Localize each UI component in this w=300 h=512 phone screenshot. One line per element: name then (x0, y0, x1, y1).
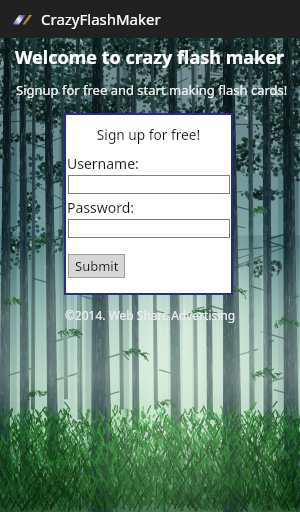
staticText: CrazyFlashMaker (41, 9, 161, 29)
staticText: Welcome to crazy flash maker (15, 45, 300, 70)
staticText: Submit (75, 257, 119, 275)
button[interactable] (68, 219, 230, 238)
staticText: Sign up for free! (67, 125, 230, 144)
staticText: Password: (67, 198, 135, 217)
button[interactable] (68, 175, 230, 194)
staticText: Signup for free and start making flash c… (16, 81, 300, 99)
other: App logo (12, 13, 32, 26)
staticText: Username: (67, 154, 139, 173)
button[interactable]: Submit (68, 254, 125, 278)
staticText: ©2014. Web Sharc Advertising (0, 307, 300, 323)
button[interactable]: App logo (0, 0, 300, 38)
